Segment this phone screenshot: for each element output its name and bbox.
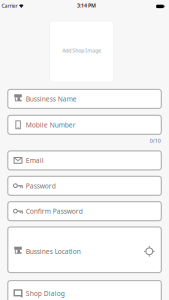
staticText: Bussiness Name [26, 94, 77, 103]
staticText: Password [26, 181, 56, 190]
staticText: 3:14 PM [77, 2, 96, 9]
button[interactable]: Email [8, 151, 161, 170]
button[interactable]: Confirm Password [8, 202, 161, 221]
button[interactable]: Mobile Number [8, 115, 161, 134]
staticText: Shop Dialog [26, 289, 65, 298]
staticText: Confirm Password [26, 207, 83, 216]
button[interactable]: Password [8, 176, 161, 195]
staticText: Carrier [1, 2, 17, 9]
staticText: 0/10 [150, 137, 161, 144]
button[interactable]: Shop Dialog [8, 281, 161, 300]
staticText: Email [26, 156, 44, 165]
staticText: Add Shop Image [62, 47, 101, 54]
button[interactable]: Use current location [143, 245, 155, 257]
staticText: Mobile Number [26, 120, 76, 129]
staticText: Bussines Location [26, 247, 81, 256]
button[interactable]: Bussiness Name [8, 89, 161, 108]
button[interactable]: Bussines Location [8, 227, 161, 273]
button[interactable]: Add Shop Image [50, 21, 114, 82]
